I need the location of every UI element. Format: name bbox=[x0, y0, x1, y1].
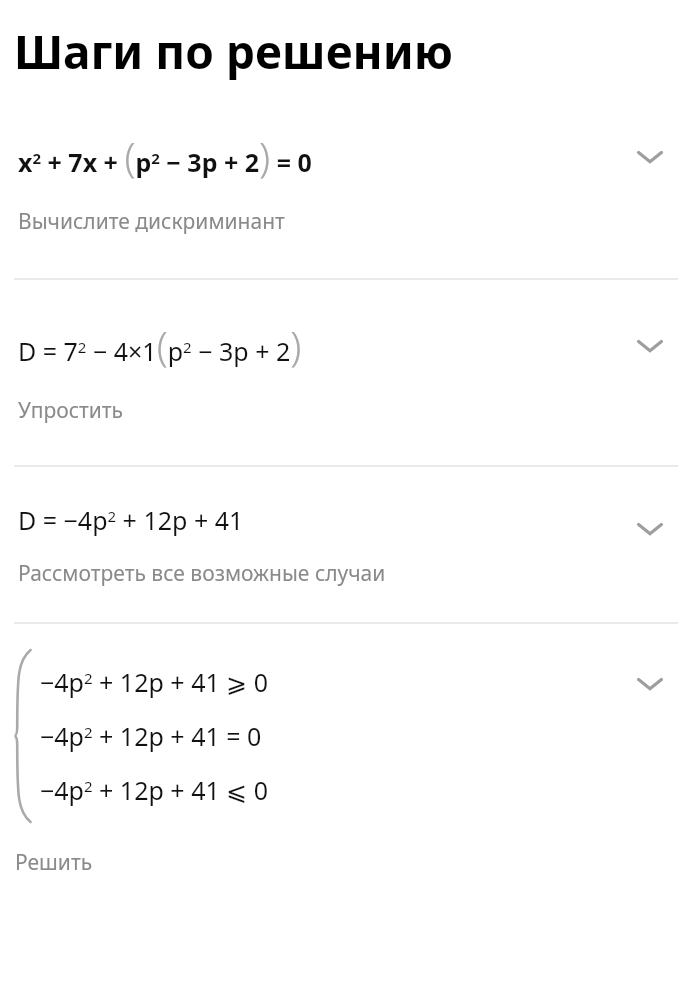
staticText: Вычислите дискриминант bbox=[18, 207, 285, 236]
button[interactable]: D = −4p2 + 12p + 41 bbox=[0, 503, 690, 588]
staticText: −4p2 + 12p + 41 ⩽ 0 bbox=[40, 773, 268, 807]
button[interactable]: Развернуть шаг 3 bbox=[624, 503, 676, 555]
staticText: x2 + 7x + (p2 − 3p + 2) = 0 bbox=[18, 129, 312, 183]
staticText: D = −4p2 + 12p + 41 bbox=[18, 503, 244, 537]
button[interactable]: x2 + 7x + (p2 − 3p + 2) = 0 bbox=[0, 129, 690, 236]
button[interactable]: −4p2 + 12p + 41 ⩾ 0 bbox=[0, 650, 690, 877]
staticText: Упростить bbox=[18, 396, 124, 425]
staticText: Рассмотреть все возможные случаи bbox=[18, 559, 386, 588]
staticText: Шаги по решению bbox=[14, 20, 453, 83]
staticText: Решить bbox=[15, 848, 93, 877]
staticText: −4p2 + 12p + 41 ⩾ 0 bbox=[40, 665, 268, 699]
staticText: D = 72 − 4×1(p2 − 3p + 2) bbox=[18, 318, 302, 372]
button[interactable]: Развернуть шаг 1 bbox=[624, 131, 676, 183]
button[interactable]: D = 72 − 4×1(p2 − 3p + 2) bbox=[0, 318, 690, 425]
button[interactable]: Развернуть шаг 4 bbox=[624, 658, 676, 710]
button[interactable]: Развернуть шаг 2 bbox=[624, 320, 676, 372]
staticText: −4p2 + 12p + 41 = 0 bbox=[40, 719, 262, 753]
